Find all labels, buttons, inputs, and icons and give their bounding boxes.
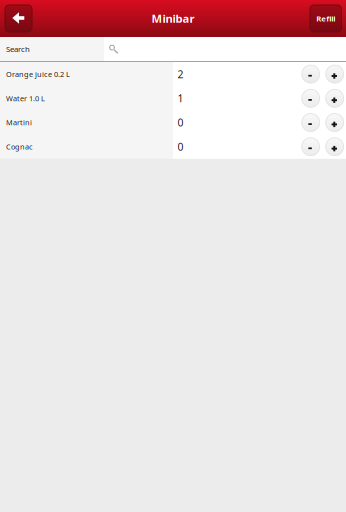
staticText: Minibar: [151, 11, 194, 26]
staticText: Cognac: [6, 142, 33, 152]
button[interactable]: Decrease Water 1.0 L: [302, 89, 320, 107]
button[interactable]: Increase Martini: [326, 113, 344, 131]
staticText: Water 1.0 L: [6, 93, 45, 103]
button[interactable]: Increase Cognac: [326, 138, 344, 156]
button[interactable]: Search: [0, 37, 346, 61]
staticText: 2: [177, 67, 183, 81]
staticText: Search: [6, 44, 30, 54]
staticText: 0: [177, 115, 183, 130]
button[interactable]: Refill: [310, 5, 341, 32]
staticText: Martini: [6, 117, 32, 127]
button[interactable]: Decrease Orange juice 0.2 L: [302, 65, 320, 83]
staticText: 0: [177, 140, 183, 154]
staticText: 1: [177, 91, 183, 105]
button[interactable]: Increase Orange juice 0.2 L: [326, 65, 344, 83]
staticText: Refill: [316, 13, 335, 24]
button[interactable]: Decrease Martini: [302, 113, 320, 131]
button[interactable]: Increase Water 1.0 L: [326, 89, 344, 107]
button[interactable]: Decrease Cognac: [302, 138, 320, 156]
staticText: Orange juice 0.2 L: [6, 69, 70, 79]
button[interactable]: Back: [5, 5, 32, 32]
